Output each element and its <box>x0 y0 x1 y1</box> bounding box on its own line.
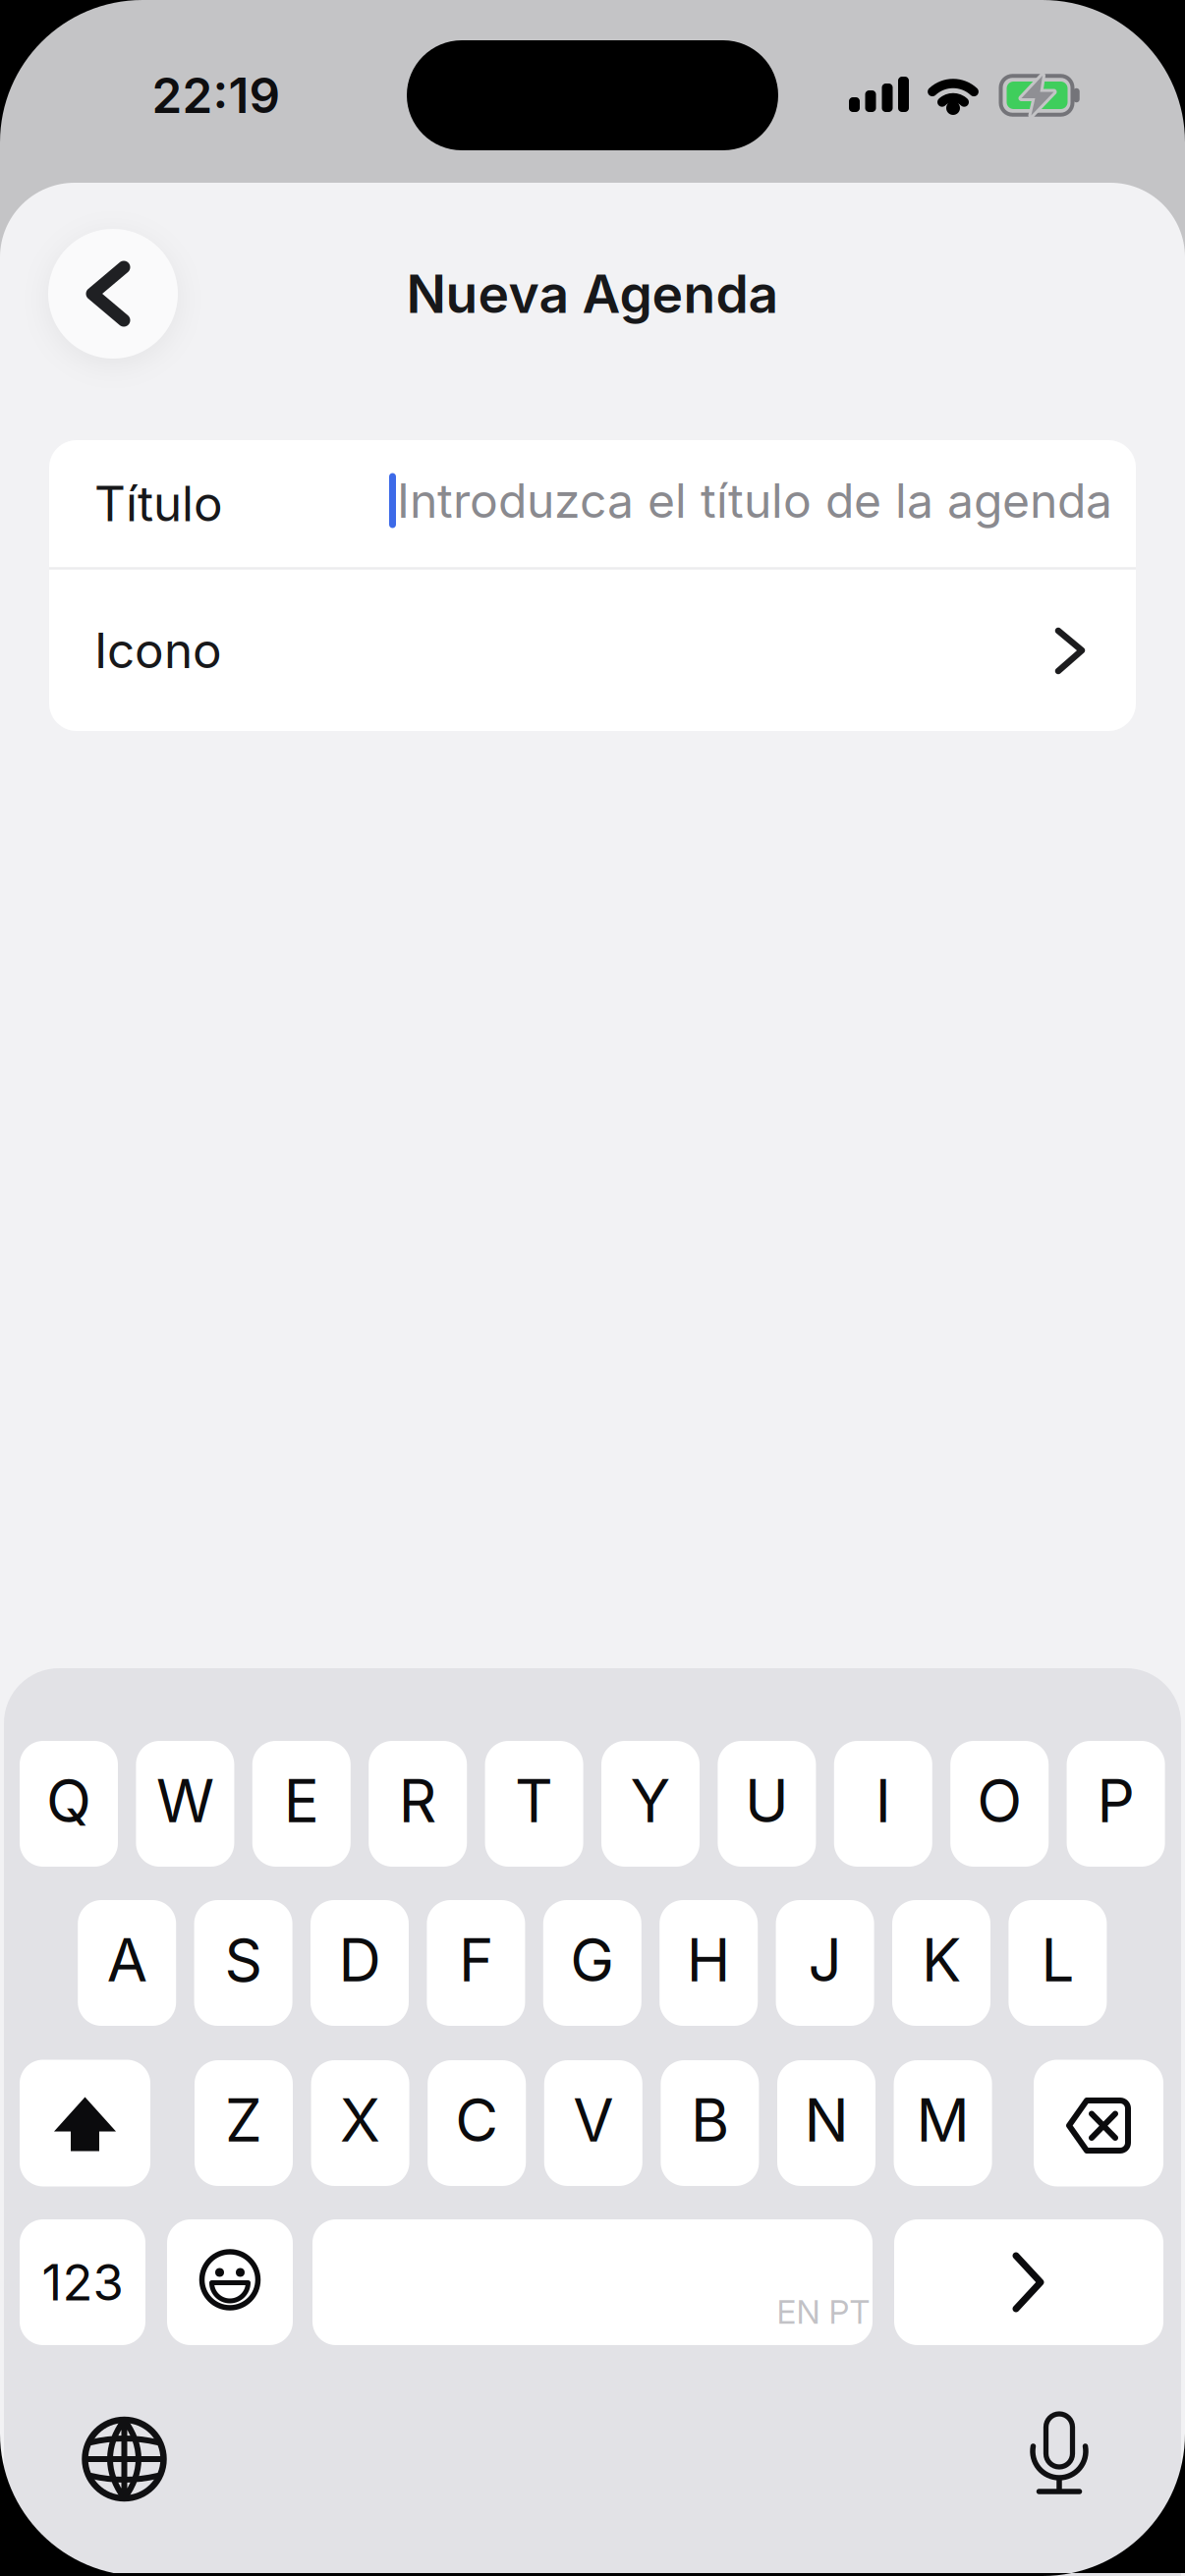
button[interactable]: W <box>136 1741 234 1867</box>
staticText: L <box>1041 1925 1074 1995</box>
button[interactable] <box>894 2219 1163 2345</box>
button[interactable] <box>167 2219 293 2345</box>
staticText: W <box>156 1766 214 1836</box>
button[interactable]: J <box>776 1900 874 2026</box>
staticText: I <box>875 1766 891 1836</box>
button[interactable]: E <box>252 1741 351 1867</box>
staticText: H <box>687 1925 731 1995</box>
staticText: 22:19 <box>152 67 281 124</box>
button[interactable]: Y <box>601 1741 700 1867</box>
staticText: K <box>922 1925 961 1995</box>
staticText: Q <box>46 1766 91 1836</box>
button[interactable]: Z <box>195 2060 293 2186</box>
staticText: A <box>107 1925 147 1995</box>
button[interactable]: G <box>543 1900 641 2026</box>
staticText: Y <box>630 1766 671 1836</box>
button[interactable]: V <box>544 2060 642 2186</box>
staticText: G <box>570 1925 614 1995</box>
staticText: Título <box>94 475 223 532</box>
button[interactable]: L <box>1009 1900 1107 2026</box>
staticText: S <box>225 1925 262 1995</box>
button[interactable]: K <box>892 1900 990 2026</box>
button[interactable]: Título <box>49 440 1136 567</box>
button[interactable] <box>1034 2060 1163 2186</box>
button[interactable]: X <box>311 2060 409 2186</box>
button[interactable] <box>20 2060 150 2186</box>
button[interactable]: H <box>660 1900 758 2026</box>
button[interactable] <box>75 2410 173 2508</box>
staticText: Introduzca el título de la agenda <box>397 473 1112 528</box>
button[interactable]: B <box>661 2060 759 2186</box>
button[interactable]: Q <box>20 1741 118 1867</box>
button[interactable]: O <box>950 1741 1049 1867</box>
button[interactable]: C <box>428 2060 526 2186</box>
staticText: Icono <box>94 622 222 679</box>
staticText: EN PT <box>777 2292 870 2331</box>
button[interactable]: I <box>834 1741 932 1867</box>
staticText: O <box>977 1766 1022 1836</box>
staticText: N <box>804 2085 848 2155</box>
staticText: Nueva Agenda <box>406 263 779 325</box>
button[interactable]: A <box>78 1900 176 2026</box>
button[interactable]: F <box>427 1900 525 2026</box>
button[interactable]: R <box>369 1741 467 1867</box>
button[interactable]: N <box>777 2060 875 2186</box>
staticText: C <box>455 2085 498 2155</box>
staticText: B <box>691 2085 729 2155</box>
button[interactable]: P <box>1067 1741 1165 1867</box>
button[interactable]: S <box>194 1900 292 2026</box>
staticText: M <box>916 2085 969 2155</box>
staticText: X <box>340 2085 380 2155</box>
staticText: E <box>284 1766 319 1836</box>
staticText: R <box>399 1766 437 1836</box>
staticText: T <box>515 1766 553 1836</box>
button[interactable]: EN PT <box>312 2219 873 2345</box>
staticText: 123 <box>42 2253 123 2312</box>
staticText: F <box>459 1925 493 1995</box>
staticText: P <box>1097 1766 1134 1836</box>
staticText: Z <box>225 2085 262 2155</box>
staticText: V <box>573 2085 613 2155</box>
button[interactable]: M <box>894 2060 992 2186</box>
staticText: U <box>745 1766 789 1836</box>
staticText: J <box>808 1925 842 1995</box>
button[interactable]: D <box>310 1900 409 2026</box>
button[interactable]: 123 <box>20 2219 145 2345</box>
button[interactable]: T <box>485 1741 583 1867</box>
button[interactable]: Icono <box>49 570 1136 731</box>
button[interactable]: U <box>718 1741 816 1867</box>
staticText: D <box>339 1925 381 1995</box>
button[interactable] <box>48 229 178 359</box>
button[interactable] <box>1010 2402 1108 2500</box>
